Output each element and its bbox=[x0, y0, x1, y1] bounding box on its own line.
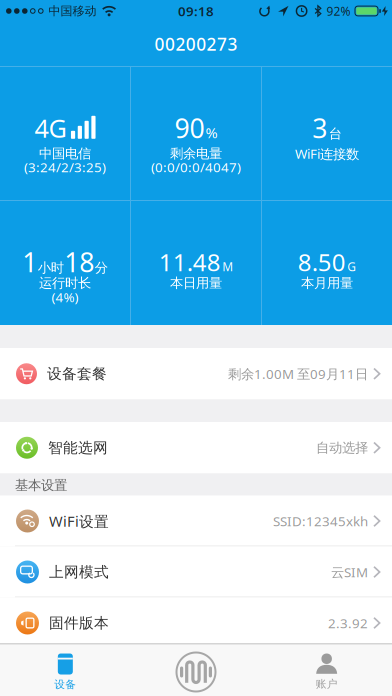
staticText: WiFi设置 bbox=[49, 511, 109, 531]
staticText: (0:0/0:0/4047) bbox=[151, 158, 241, 176]
staticText: (3:24/2/3:25) bbox=[24, 158, 106, 176]
staticText: 18 bbox=[64, 244, 94, 280]
staticText: 云SIM bbox=[331, 563, 368, 581]
staticText: 剩余电量 bbox=[170, 145, 222, 162]
button[interactable]: 上网模式 bbox=[0, 546, 392, 597]
staticText: 设备 bbox=[54, 678, 76, 691]
button[interactable]: 信号 bbox=[131, 644, 261, 696]
staticText: 固件版本 bbox=[49, 614, 109, 632]
staticText: WiFi连接数 bbox=[295, 145, 359, 162]
staticText: 智能选网 bbox=[48, 439, 108, 457]
staticText: M bbox=[222, 259, 233, 275]
staticText: 3 bbox=[312, 110, 327, 146]
staticText: 基本设置 bbox=[15, 477, 67, 493]
staticText: 92% bbox=[326, 3, 350, 19]
staticText: 2.3.92 bbox=[328, 614, 368, 632]
staticText: G bbox=[347, 259, 356, 275]
button[interactable]: 设备 bbox=[0, 644, 131, 696]
button[interactable]: 账户 bbox=[261, 644, 392, 696]
staticText: 账户 bbox=[316, 677, 338, 690]
button[interactable]: 智能选网 bbox=[0, 422, 392, 473]
staticText: 00200273 bbox=[155, 32, 237, 55]
staticText: 分 bbox=[95, 260, 108, 276]
button[interactable]: 设备套餐 bbox=[0, 348, 392, 399]
staticText: 90 bbox=[174, 110, 204, 146]
staticText: 设备套餐 bbox=[47, 365, 107, 383]
button[interactable]: WiFi设置 bbox=[0, 495, 392, 546]
staticText: % bbox=[205, 123, 217, 142]
staticText: 上网模式 bbox=[49, 563, 109, 581]
staticText: 本月用量 bbox=[301, 275, 353, 291]
staticText: 1 bbox=[22, 244, 37, 280]
staticText: 中国电信 bbox=[39, 145, 91, 162]
staticText: 09:18 bbox=[178, 2, 214, 20]
button[interactable]: 固件版本 bbox=[0, 597, 392, 648]
staticText: 4G bbox=[34, 111, 66, 145]
staticText: 小时 bbox=[38, 260, 64, 276]
staticText: 11.48 bbox=[159, 246, 221, 278]
staticText: 台 bbox=[329, 126, 342, 142]
staticText: 剩余1.00M 至09月11日 bbox=[228, 365, 368, 383]
staticText: 8.50 bbox=[298, 246, 346, 278]
staticText: (4%) bbox=[51, 288, 78, 306]
staticText: SSID:12345xkh bbox=[273, 512, 368, 530]
staticText: 自动选择 bbox=[316, 440, 368, 456]
staticText: 运行时长 bbox=[39, 275, 91, 291]
staticText: 本日用量 bbox=[170, 275, 222, 291]
staticText: 中国移动 bbox=[49, 4, 97, 18]
